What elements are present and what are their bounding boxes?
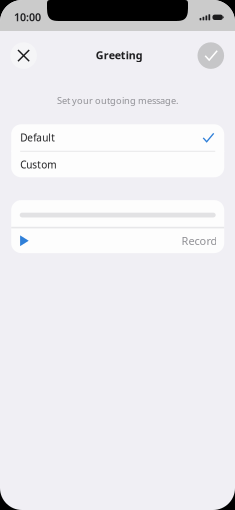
button[interactable]: Done <box>197 42 224 69</box>
staticText: Default <box>20 131 55 144</box>
button[interactable]: Record <box>181 233 218 248</box>
button[interactable]: Custom <box>11 152 224 177</box>
staticText: Greeting <box>96 48 143 62</box>
staticText: Record <box>181 233 217 248</box>
button[interactable]: Close <box>10 42 37 69</box>
button[interactable]: Default <box>11 124 224 151</box>
staticText: Set your outgoing message. <box>57 94 178 107</box>
staticText: 10:00 <box>14 10 41 24</box>
staticText: Custom <box>20 158 56 171</box>
button[interactable]: Play <box>20 231 40 251</box>
